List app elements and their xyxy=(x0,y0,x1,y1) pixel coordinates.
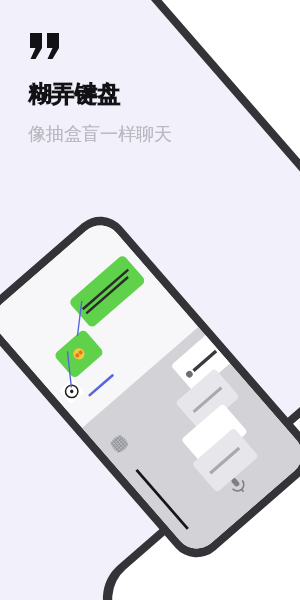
button[interactable]: 糊弄键盘 应用介绍 xyxy=(0,0,300,600)
